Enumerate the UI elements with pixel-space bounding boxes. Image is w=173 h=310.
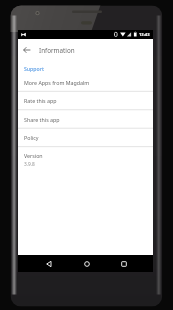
- button[interactable]: Navigate up: [21, 44, 33, 56]
- staticText: Version: [24, 152, 43, 159]
- staticText: Support: [24, 65, 44, 72]
- staticText: More Apps from Magdalm: [24, 79, 90, 86]
- button[interactable]: Home: [75, 255, 99, 272]
- staticText: Share this app: [24, 116, 60, 123]
- button[interactable]: Back: [37, 255, 61, 272]
- button[interactable]: Policy: [18, 128, 153, 146]
- staticText: Rate this app: [24, 97, 57, 104]
- staticText: Policy: [24, 134, 39, 141]
- staticText: Information: [39, 46, 75, 55]
- button[interactable]: Rate this app: [18, 91, 153, 109]
- button[interactable]: Recent apps: [112, 255, 136, 272]
- button[interactable]: Share this app: [18, 110, 153, 128]
- staticText: 3.9.8: [24, 161, 35, 168]
- button[interactable]: Version: [18, 147, 153, 169]
- button[interactable]: More Apps from Magdalm: [18, 73, 153, 91]
- staticText: 13:43: [139, 32, 150, 38]
